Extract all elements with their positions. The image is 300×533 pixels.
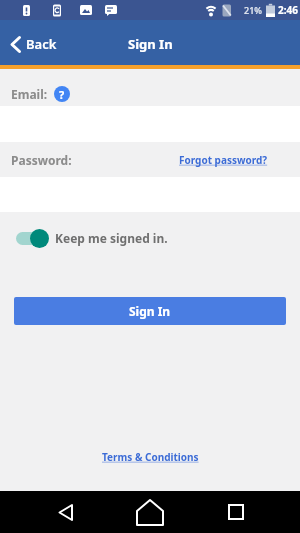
staticText: Sign In <box>128 35 173 53</box>
staticText: Forgot password? <box>179 153 268 167</box>
button[interactable]: ? <box>54 86 70 102</box>
staticText: Back <box>26 35 57 53</box>
button[interactable]: Keep me signed in. <box>0 212 300 264</box>
staticText: Sign In <box>129 303 171 319</box>
staticText: Keep me signed in. <box>55 230 168 246</box>
button[interactable]: Sign In <box>14 297 286 325</box>
staticText: 2:46 <box>278 3 298 17</box>
button[interactable] <box>215 491 257 533</box>
button[interactable] <box>44 491 86 533</box>
button[interactable]: Back <box>10 35 57 53</box>
staticText: Email: <box>11 86 48 102</box>
button[interactable]: Forgot password? <box>179 153 268 167</box>
button[interactable]: Terms & Conditions <box>102 450 199 464</box>
staticText: ? <box>59 87 65 102</box>
staticText: Terms & Conditions <box>102 450 199 464</box>
staticText: 21% <box>244 4 262 16</box>
button[interactable] <box>129 491 171 533</box>
staticText: Password: <box>11 152 72 168</box>
